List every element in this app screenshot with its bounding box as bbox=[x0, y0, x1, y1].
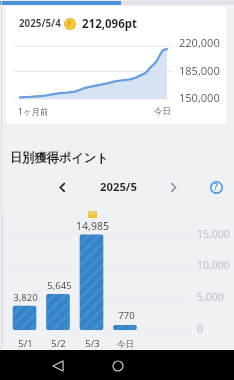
staticText: 今日 bbox=[154, 106, 171, 117]
staticText: 1ヶ月前 bbox=[18, 106, 49, 118]
staticText: 今日 bbox=[117, 339, 134, 350]
staticText: ? bbox=[214, 181, 218, 193]
staticText: 5,645 bbox=[47, 279, 72, 292]
staticText: 212,096pt bbox=[82, 16, 138, 32]
staticText: 0 bbox=[197, 322, 204, 336]
button[interactable]: Home bbox=[112, 360, 124, 372]
staticText: 770 bbox=[118, 309, 135, 322]
button[interactable]: Back bbox=[52, 360, 64, 372]
staticText: 2025/5/4 bbox=[19, 17, 61, 30]
staticText: 185,000 bbox=[179, 63, 220, 78]
staticText: 10,000 bbox=[197, 258, 230, 272]
staticText: 5/2 bbox=[51, 337, 66, 350]
staticText: 220,000 bbox=[179, 35, 220, 50]
staticText: 日別獲得ポイント bbox=[10, 150, 109, 165]
staticText: 3,820 bbox=[13, 291, 38, 304]
button[interactable]: Previous month bbox=[52, 177, 72, 197]
staticText: 5/1 bbox=[18, 337, 33, 350]
staticText: 5/3 bbox=[85, 337, 100, 350]
staticText: 15,000 bbox=[197, 227, 230, 241]
staticText: 5,000 bbox=[197, 290, 224, 304]
staticText: 2025/5 bbox=[100, 179, 137, 194]
staticText: 150,000 bbox=[179, 90, 220, 105]
button[interactable]: Next month bbox=[163, 177, 183, 197]
button[interactable]: Help bbox=[206, 177, 226, 197]
staticText: 14,985 bbox=[76, 219, 109, 233]
